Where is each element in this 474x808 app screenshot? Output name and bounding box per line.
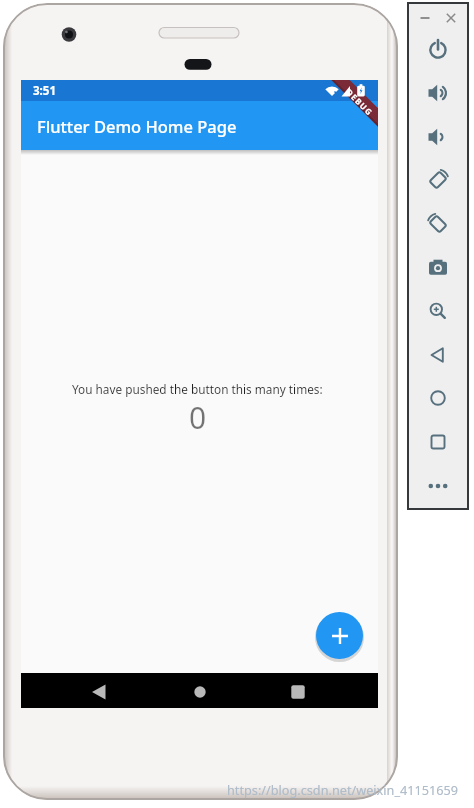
button[interactable] [418,160,458,200]
button[interactable] [418,422,458,462]
button[interactable] [418,73,458,113]
staticText: Flutter Demo Home Page [37,115,237,137]
button[interactable] [418,204,458,244]
button[interactable] [418,30,458,70]
button[interactable] [418,466,458,506]
button[interactable] [418,117,458,157]
button[interactable] [441,8,461,28]
button[interactable]: Flutter Demo Home Page [21,101,378,150]
button[interactable] [316,612,363,659]
button[interactable] [418,291,458,331]
button[interactable] [418,378,458,418]
button[interactable] [185,677,215,707]
button[interactable] [84,677,114,707]
staticText: 0 [189,397,207,438]
button[interactable] [418,248,458,288]
staticText: https://blog.csdn.net/weixin_41151659 [227,781,459,798]
staticText: You have pushed the button this many tim… [72,381,323,397]
staticText: 3:51 [33,83,56,99]
button[interactable] [418,335,458,375]
staticText: DEBUG [344,86,376,118]
button[interactable] [415,8,435,28]
button[interactable] [283,677,313,707]
